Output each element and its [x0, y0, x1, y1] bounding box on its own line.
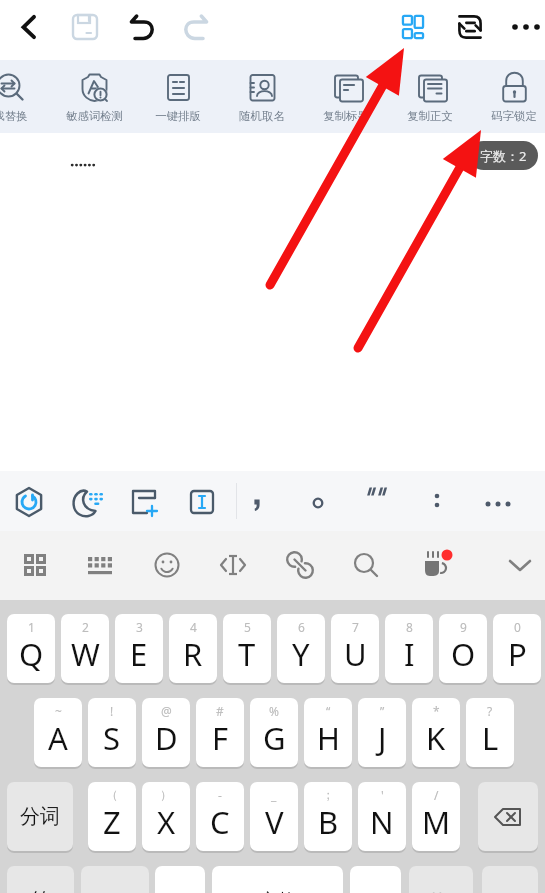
- button[interactable]: Ellipsis: [470, 474, 526, 528]
- staticText: H: [317, 717, 340, 759]
- button[interactable]: Keyboard layouts: [12, 542, 58, 588]
- staticText: ）: [160, 787, 172, 802]
- button[interactable]: Z: [88, 782, 136, 851]
- button[interactable]: N: [358, 782, 406, 851]
- button[interactable]: 复制标题: [304, 60, 388, 132]
- staticText: 符: [31, 888, 51, 893]
- button[interactable]: U: [331, 614, 379, 683]
- button[interactable]: Coffee: [413, 542, 459, 588]
- button[interactable]: Quotes: [350, 474, 406, 528]
- staticText: _: [271, 787, 277, 803]
- button[interactable]: C: [196, 782, 244, 851]
- staticText: V: [265, 801, 284, 843]
- staticText: @: [161, 703, 172, 719]
- button[interactable]: 分词: [7, 782, 73, 851]
- staticText: 复制正文: [407, 109, 453, 123]
- button[interactable]: Text select: [182, 482, 222, 522]
- button[interactable]: X: [142, 782, 190, 851]
- button[interactable]: G: [250, 698, 298, 767]
- staticText: ”: [380, 703, 385, 719]
- button[interactable]: Grid: [392, 5, 436, 49]
- button[interactable]: P: [493, 614, 541, 683]
- button[interactable]: 符: [7, 866, 74, 893]
- staticText: -: [218, 787, 222, 803]
- staticText: E: [130, 633, 148, 675]
- staticText: 4: [190, 619, 197, 635]
- button[interactable]: M: [412, 782, 460, 851]
- button[interactable]: Period: [290, 474, 346, 528]
- button[interactable]: Back: [7, 5, 51, 49]
- staticText: U: [344, 633, 367, 675]
- button[interactable]: 敏感词检测: [52, 60, 136, 132]
- staticText: ~: [55, 703, 62, 719]
- button[interactable]: V: [250, 782, 298, 851]
- staticText: P: [508, 633, 527, 675]
- staticText: ；: [322, 787, 334, 802]
- button[interactable]: R: [169, 614, 217, 683]
- staticText: 6: [298, 619, 305, 635]
- button[interactable]: Redo: [175, 5, 219, 49]
- button[interactable]: Cursor: [210, 542, 256, 588]
- staticText: I: [404, 633, 415, 675]
- button[interactable]: Emoji: [144, 542, 190, 588]
- button[interactable]: 码字锁定: [472, 60, 545, 132]
- button[interactable]: 一键排版: [136, 60, 220, 132]
- button[interactable]: D: [142, 698, 190, 767]
- button[interactable]: New note: [124, 482, 164, 522]
- staticText: S: [103, 717, 121, 759]
- button[interactable]: Hide keyboard: [497, 542, 543, 588]
- staticText: 码字锁定: [491, 109, 537, 123]
- button[interactable]: AI: [9, 482, 49, 522]
- staticText: %: [269, 703, 279, 719]
- staticText: O: [451, 633, 476, 675]
- button[interactable]: Colon: [409, 474, 465, 528]
- button[interactable]: K: [412, 698, 460, 767]
- button[interactable]: Keyboard: [77, 542, 123, 588]
- button[interactable]: Chapters: [448, 5, 492, 49]
- staticText: J: [378, 717, 387, 759]
- button[interactable]: J: [358, 698, 406, 767]
- button[interactable]: [478, 782, 538, 851]
- button[interactable]: [350, 866, 401, 893]
- staticText: 敏感词检测: [66, 109, 123, 123]
- button[interactable]: Search: [343, 542, 389, 588]
- button[interactable]: Y: [277, 614, 325, 683]
- button[interactable]: 随机取名: [220, 60, 304, 132]
- button[interactable]: Q: [7, 614, 55, 683]
- button[interactable]: [155, 866, 205, 893]
- button[interactable]: O: [439, 614, 487, 683]
- staticText: 1: [28, 619, 35, 635]
- staticText: 2: [82, 619, 89, 635]
- staticText: 8: [406, 619, 413, 635]
- staticText: 找替换: [0, 109, 28, 123]
- button[interactable]: Clip: [277, 542, 323, 588]
- button[interactable]: More: [504, 5, 545, 49]
- button[interactable]: I: [385, 614, 433, 683]
- button[interactable]: L: [466, 698, 514, 767]
- button[interactable]: Night: [67, 482, 107, 522]
- button[interactable]: Save: [63, 5, 107, 49]
- button[interactable]: B: [304, 782, 352, 851]
- staticText: R: [183, 633, 203, 675]
- staticText: A: [48, 717, 68, 759]
- button[interactable]: 空格: [212, 866, 343, 893]
- button[interactable]: Undo: [119, 5, 163, 49]
- staticText: Y: [292, 633, 310, 675]
- button[interactable]: E: [115, 614, 163, 683]
- button[interactable]: W: [61, 614, 109, 683]
- button[interactable]: 复制正文: [388, 60, 472, 132]
- button[interactable]: A: [34, 698, 82, 767]
- button[interactable]: Comma: [229, 474, 285, 528]
- staticText: 7: [352, 619, 359, 635]
- button[interactable]: 字数：2: [469, 141, 538, 170]
- button[interactable]: S: [88, 698, 136, 767]
- staticText: 分词: [20, 804, 60, 829]
- staticText: C: [210, 801, 230, 843]
- button[interactable]: H: [304, 698, 352, 767]
- button[interactable]: T: [223, 614, 271, 683]
- button[interactable]: 找替换: [0, 60, 52, 132]
- button[interactable]: F: [196, 698, 244, 767]
